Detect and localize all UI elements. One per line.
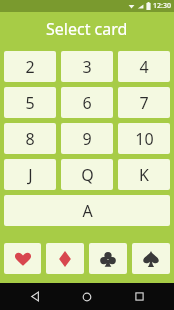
button[interactable]: 9 <box>61 123 113 154</box>
button[interactable]: 2 <box>4 51 56 82</box>
button[interactable]: 6 <box>61 87 113 118</box>
staticText: 8 <box>25 128 35 150</box>
button[interactable]: J <box>4 159 56 190</box>
staticText: 3 <box>82 56 92 78</box>
button[interactable]: Clubs <box>89 243 127 274</box>
staticText: J <box>28 164 33 186</box>
button[interactable]: K <box>118 159 170 190</box>
button[interactable]: 8 <box>4 123 56 154</box>
button[interactable]: Hearts <box>4 243 41 274</box>
button[interactable]: 10 <box>118 123 170 154</box>
staticText: Select card <box>46 18 128 40</box>
button[interactable]: Q <box>61 159 113 190</box>
staticText: K <box>139 164 149 186</box>
staticText: 9 <box>82 128 92 150</box>
button[interactable]: 7 <box>118 87 170 118</box>
staticText: 6 <box>82 92 92 114</box>
button[interactable]: Back <box>18 283 52 310</box>
button[interactable]: Diamonds <box>46 243 84 274</box>
staticText: 7 <box>139 92 149 114</box>
button[interactable]: A <box>4 195 170 226</box>
button[interactable]: 4 <box>118 51 170 82</box>
staticText: A <box>82 200 93 222</box>
staticText: 4 <box>139 56 149 78</box>
button[interactable]: Recent apps <box>122 283 156 310</box>
button[interactable]: 5 <box>4 87 56 118</box>
button[interactable]: Home <box>70 283 104 310</box>
staticText: 10 <box>135 128 154 150</box>
staticText: 2 <box>25 56 35 78</box>
staticText: 12:30 <box>153 1 171 11</box>
button[interactable]: 3 <box>61 51 113 82</box>
staticText: Q <box>81 164 94 186</box>
staticText: 5 <box>25 92 35 114</box>
button[interactable]: Spades <box>132 243 170 274</box>
